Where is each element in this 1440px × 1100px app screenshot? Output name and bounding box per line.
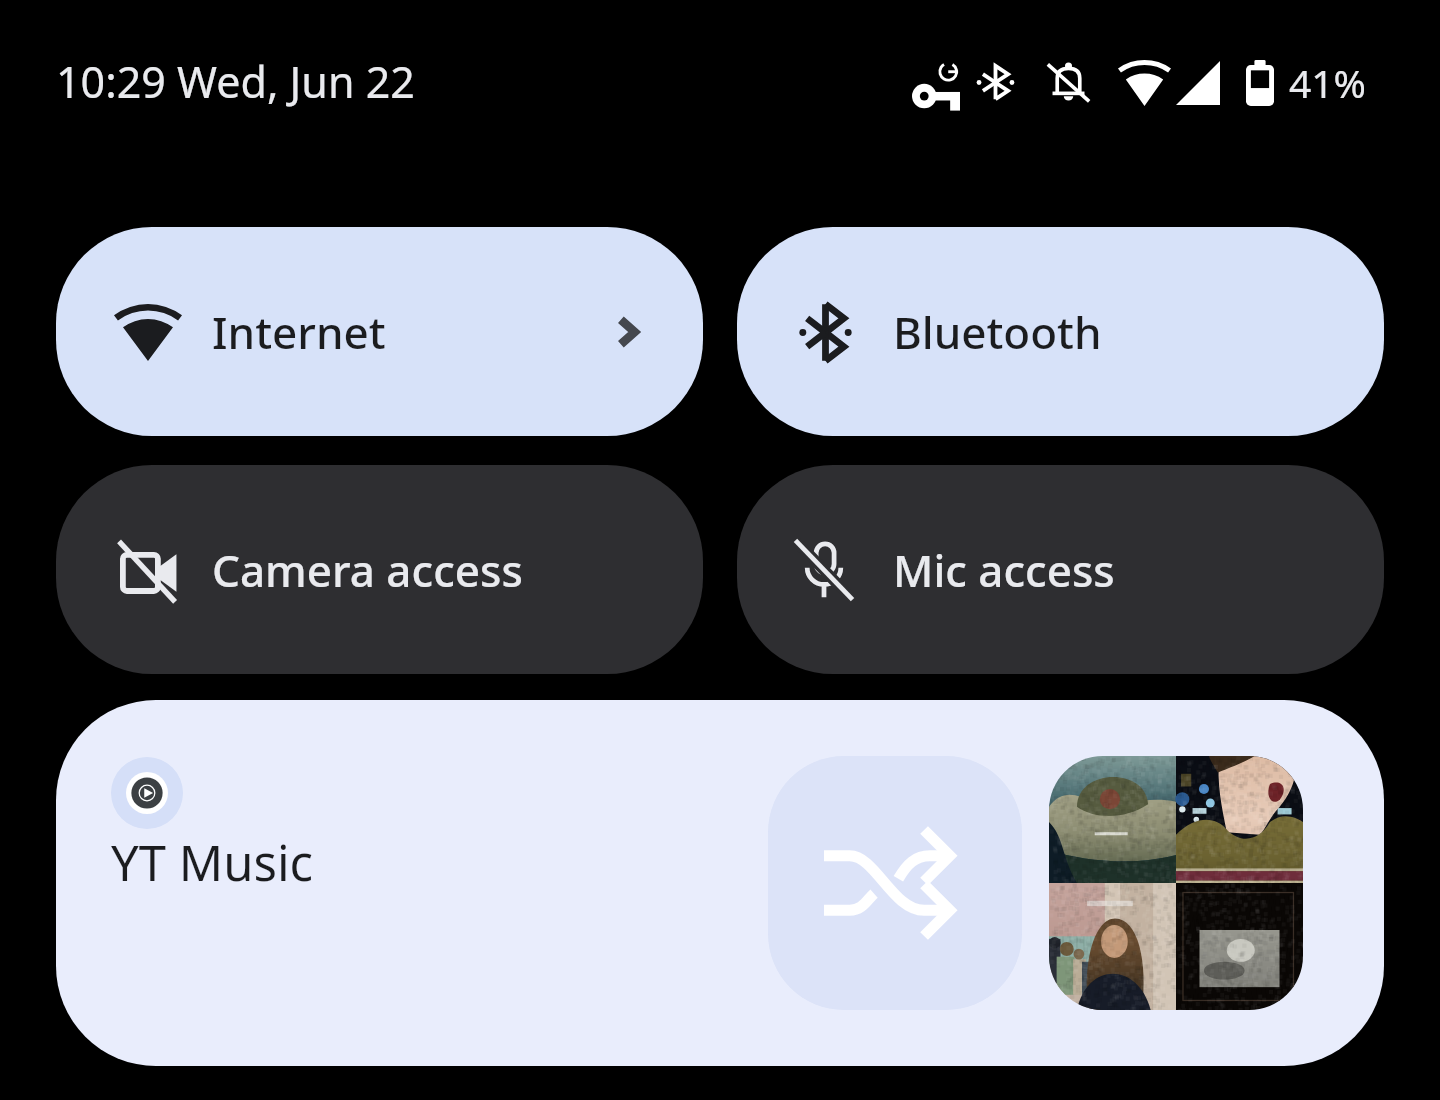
staticText: 41% — [1289, 56, 1367, 109]
button[interactable]: Recent albums — [1049, 756, 1303, 1010]
staticText: YT Music — [111, 829, 314, 896]
staticText: 10:29 Wed, Jun 22 — [56, 52, 415, 111]
staticText: Internet — [212, 302, 386, 362]
button[interactable]: Shuffle — [768, 756, 1022, 1010]
staticText: Mic access — [893, 540, 1115, 600]
staticText: Bluetooth — [893, 302, 1102, 362]
staticText: Camera access — [212, 540, 523, 600]
button[interactable]: Mic access — [737, 465, 1384, 674]
button[interactable]: Internet — [56, 227, 703, 436]
button[interactable]: Camera access — [56, 465, 703, 674]
button[interactable]: Bluetooth — [737, 227, 1384, 436]
button[interactable]: YT Music — [56, 700, 1384, 1066]
